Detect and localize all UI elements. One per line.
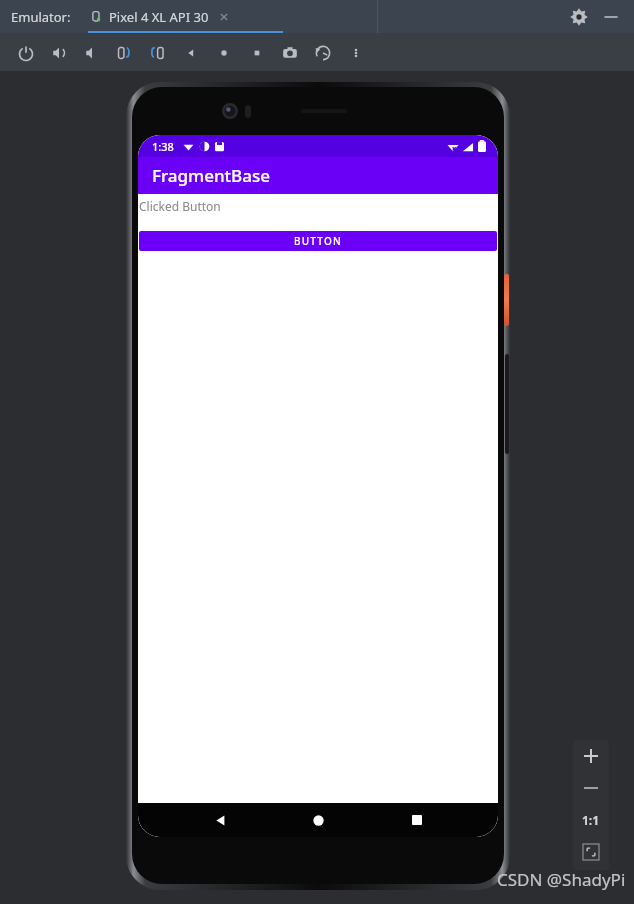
staticText: 1:38 bbox=[152, 139, 174, 154]
button[interactable]: Recents bbox=[400, 803, 434, 837]
button[interactable]: Home bbox=[301, 803, 335, 837]
button[interactable]: BUTTON bbox=[139, 231, 497, 251]
button[interactable]: Rotate right bbox=[141, 36, 174, 69]
button[interactable]: Home bbox=[207, 36, 240, 69]
staticText: CSDN @ShadyPi bbox=[497, 868, 626, 891]
button[interactable]: Rotate left bbox=[108, 36, 141, 69]
staticText: 1:1 bbox=[582, 812, 600, 828]
staticText: Clicked Button bbox=[139, 198, 221, 214]
button[interactable]: Minimize bbox=[600, 6, 622, 28]
button[interactable]: 1:1 bbox=[575, 804, 607, 836]
button[interactable]: Zoom in bbox=[575, 740, 607, 772]
button[interactable]: Settings bbox=[568, 6, 590, 28]
staticText: Pixel 4 XL API 30 bbox=[109, 8, 209, 26]
staticText: FragmentBase bbox=[152, 164, 270, 187]
button[interactable]: Screenshot bbox=[273, 36, 306, 69]
button[interactable]: Power bbox=[9, 36, 42, 69]
button[interactable]: Overview bbox=[240, 36, 273, 69]
button[interactable]: Volume down bbox=[75, 36, 108, 69]
button[interactable]: Close tab bbox=[217, 10, 231, 24]
staticText: Emulator: bbox=[11, 8, 71, 26]
button[interactable]: Zoom to fit bbox=[575, 836, 607, 868]
button[interactable]: Pixel 4 XL API 30 bbox=[88, 0, 231, 33]
button[interactable]: Back bbox=[174, 36, 207, 69]
button[interactable]: History bbox=[306, 36, 339, 69]
button[interactable]: Volume up bbox=[42, 36, 75, 69]
button[interactable]: Back bbox=[203, 803, 237, 837]
button[interactable]: More bbox=[339, 36, 372, 69]
staticText: BUTTON bbox=[294, 234, 342, 248]
button[interactable]: Zoom out bbox=[575, 772, 607, 804]
